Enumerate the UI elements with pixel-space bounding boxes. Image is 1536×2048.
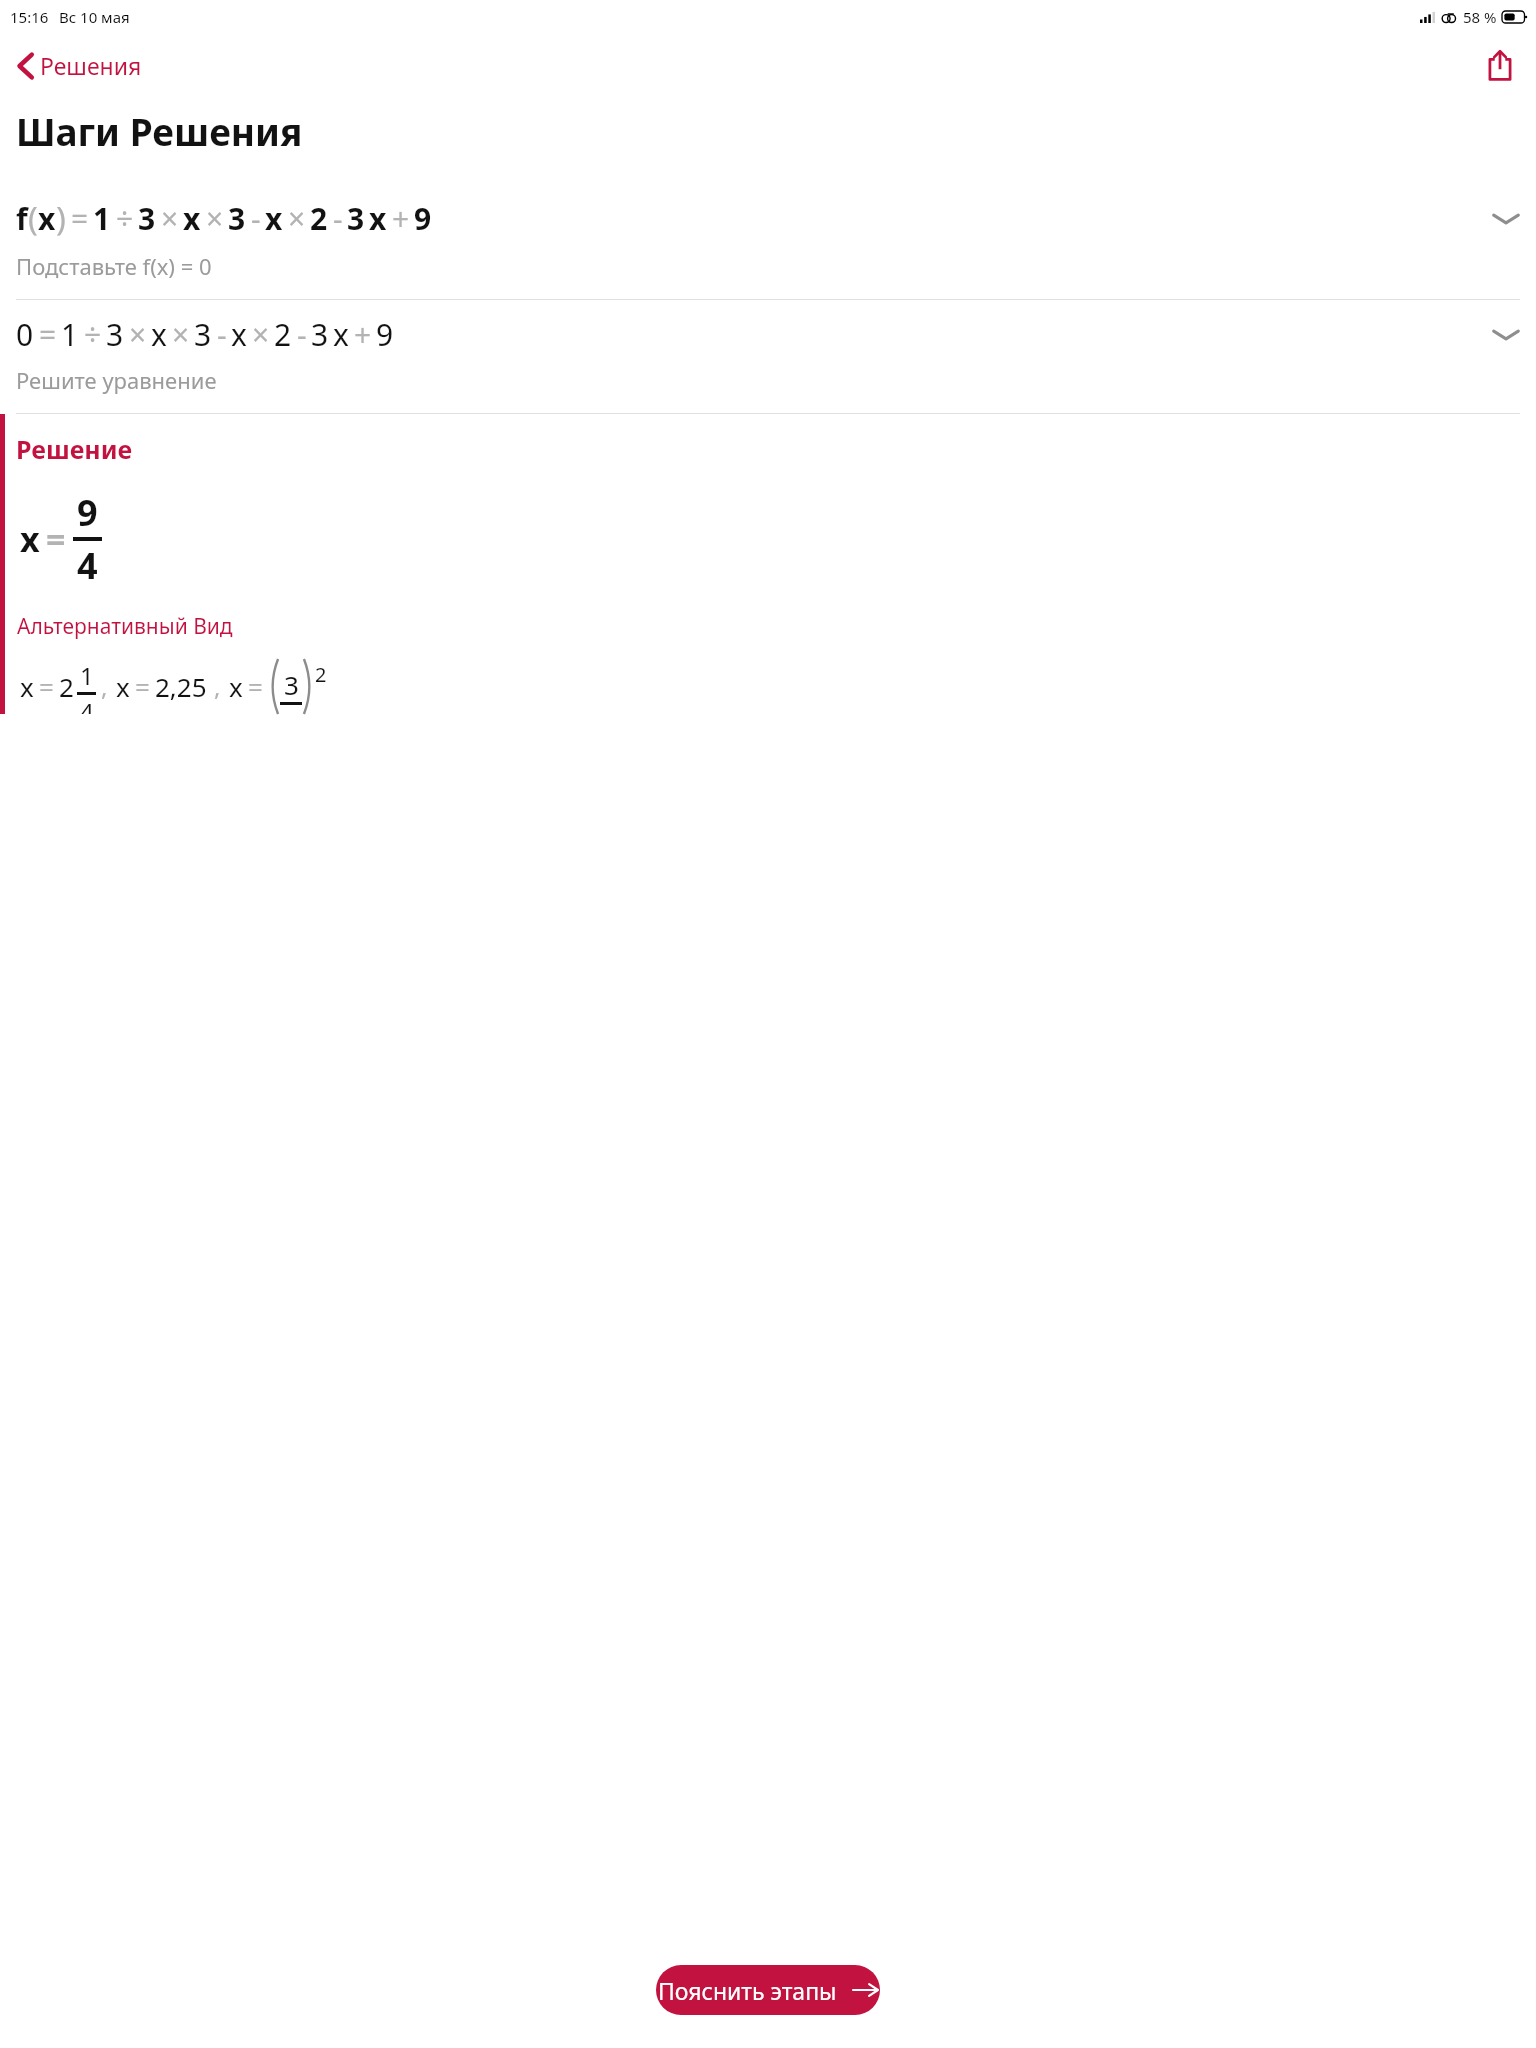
staticText: 2 <box>59 669 74 704</box>
staticText: × <box>288 198 306 239</box>
staticText: 1 <box>93 198 111 239</box>
staticText: = <box>135 669 150 704</box>
staticText: x <box>265 198 283 239</box>
staticText: 9 <box>414 198 432 239</box>
staticText: Решите уравнение <box>16 365 217 395</box>
staticText: 3 <box>347 198 365 239</box>
staticText: x <box>333 314 349 355</box>
staticText: Альтернативный Вид <box>17 612 233 641</box>
staticText: × <box>252 314 270 355</box>
staticText: , <box>101 670 108 703</box>
staticText: - <box>251 198 261 239</box>
staticText: Решение <box>16 432 133 466</box>
staticText: 0 <box>16 314 34 355</box>
staticText: 9 <box>77 488 98 537</box>
staticText: 2 <box>315 661 327 688</box>
staticText: × <box>172 314 190 355</box>
staticText: Шаги Решения <box>16 106 303 156</box>
staticText: x <box>369 198 387 239</box>
staticText: + <box>354 314 372 355</box>
staticText: x <box>183 198 201 239</box>
staticText: × <box>161 198 179 239</box>
staticText: 3 <box>228 198 246 239</box>
staticText: 3 <box>138 198 156 239</box>
staticText: Вс 10 мая <box>59 7 130 27</box>
staticText: 15:16 <box>10 7 49 27</box>
staticText: + <box>392 198 410 239</box>
staticText: f <box>16 198 28 239</box>
button[interactable]: Share <box>1480 42 1520 89</box>
staticText: 2 <box>310 198 328 239</box>
staticText: 3 <box>106 314 124 355</box>
staticText: = <box>39 669 54 704</box>
staticText: ÷ <box>84 314 102 355</box>
button[interactable]: Пояснить этапы <box>656 1965 880 2015</box>
staticText: 4 <box>80 695 94 714</box>
staticText: x <box>38 198 56 239</box>
staticText: 2,25 <box>155 669 207 704</box>
staticText: 3 <box>194 314 212 355</box>
staticText: × <box>206 198 224 239</box>
staticText: 9 <box>376 314 394 355</box>
staticText: × <box>129 314 147 355</box>
staticText: x <box>116 669 130 704</box>
staticText: 1 <box>80 659 94 692</box>
button[interactable]: f <box>0 182 1536 299</box>
button[interactable]: 0 <box>0 300 1536 413</box>
staticText: x <box>20 669 34 704</box>
staticText: - <box>333 198 343 239</box>
staticText: , <box>214 670 221 703</box>
staticText: = <box>46 516 66 562</box>
staticText: Пояснить этапы <box>658 1975 837 2006</box>
staticText: = <box>248 669 263 704</box>
staticText: x <box>231 314 247 355</box>
staticText: ÷ <box>116 198 134 239</box>
staticText: Решения <box>40 50 142 81</box>
staticText: 1 <box>61 314 79 355</box>
staticText: x <box>229 669 243 704</box>
staticText: = <box>71 198 89 239</box>
staticText: - <box>297 314 307 355</box>
staticText: = <box>39 314 57 355</box>
staticText: x <box>20 516 40 562</box>
staticText: 3 <box>284 667 299 702</box>
staticText: 4 <box>77 541 98 590</box>
staticText: ) <box>56 196 66 241</box>
staticText: 3 <box>311 314 329 355</box>
staticText: Подставьте f(x) = 0 <box>16 251 212 281</box>
staticText: ( <box>28 196 38 241</box>
button[interactable]: Решения <box>12 44 148 87</box>
staticText: 2 <box>274 314 292 355</box>
staticText: 58 % <box>1463 7 1497 27</box>
staticText: x <box>151 314 167 355</box>
staticText: - <box>217 314 227 355</box>
